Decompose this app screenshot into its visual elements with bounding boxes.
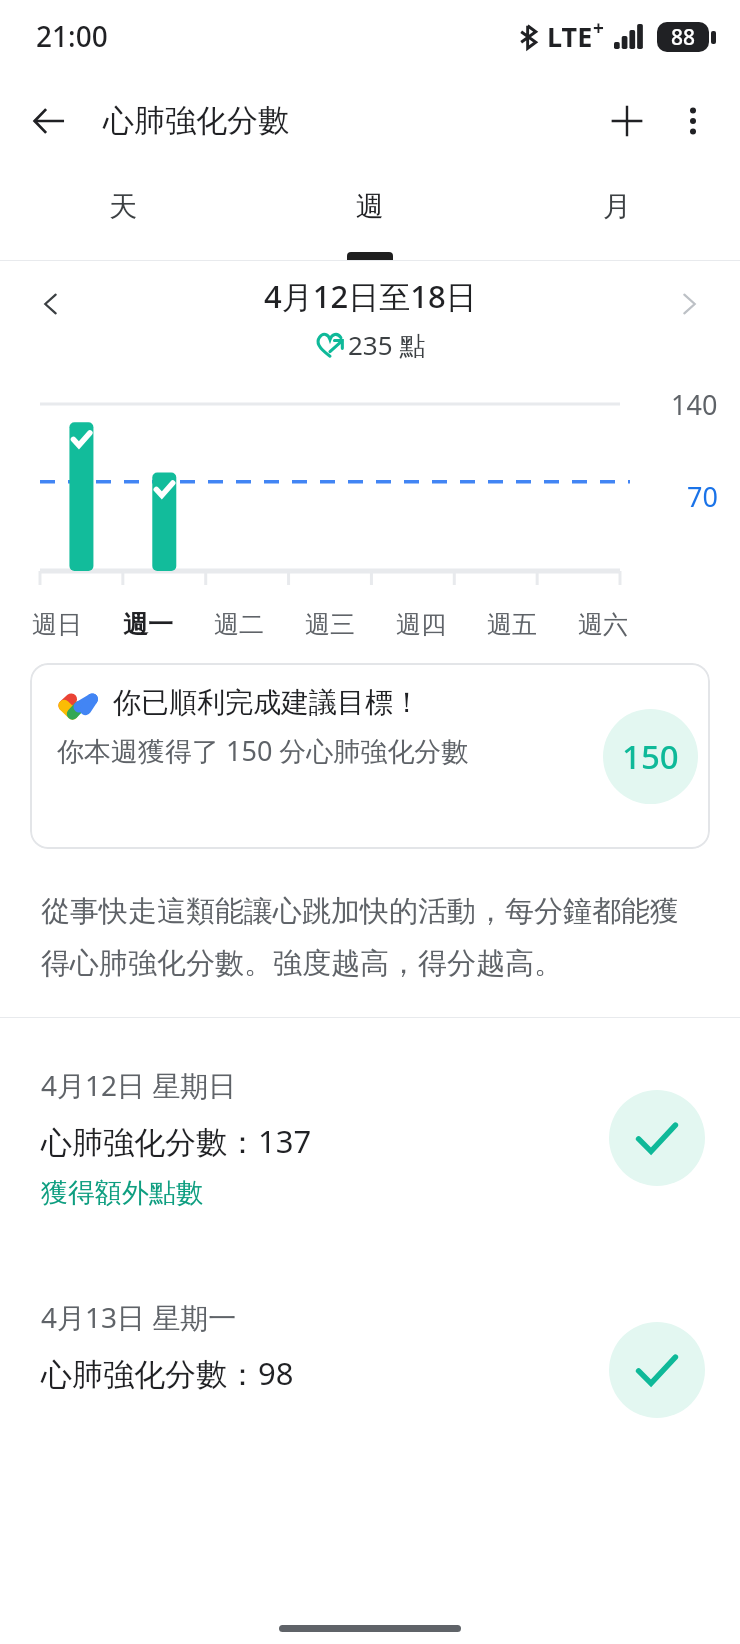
button[interactable]: 上一週 bbox=[22, 275, 80, 333]
staticText: 4月13日 星期一 bbox=[41, 1298, 237, 1336]
staticText: 心肺強化分數：98 bbox=[41, 1352, 294, 1394]
staticText: 週日 bbox=[32, 609, 82, 640]
staticText: 235 點 bbox=[348, 327, 426, 363]
staticText: 你已順利完成建議目標！ bbox=[113, 685, 421, 720]
staticText: 週 bbox=[356, 189, 384, 224]
staticText: 週四 bbox=[396, 609, 446, 640]
staticText: 21:00 bbox=[36, 17, 108, 55]
staticText: 4月12日至18日 bbox=[264, 275, 477, 317]
staticText: 月 bbox=[603, 189, 631, 224]
staticText: 150 bbox=[622, 734, 679, 779]
button[interactable]: 更多選項 bbox=[660, 88, 726, 154]
staticText: LTE bbox=[547, 18, 593, 55]
staticText: 心肺強化分數：137 bbox=[41, 1120, 312, 1162]
staticText: 你本週獲得了 150 分心肺強化分數 bbox=[57, 732, 469, 769]
staticText: 70 bbox=[687, 478, 718, 515]
staticText: 天 bbox=[109, 189, 137, 224]
staticText: 週五 bbox=[487, 609, 537, 640]
button[interactable]: 4月12日 星期日 bbox=[0, 1018, 740, 1250]
staticText: 獲得額外點數 bbox=[41, 1176, 203, 1210]
button[interactable]: 週 bbox=[246, 169, 493, 260]
staticText: 從事快走這類能讓心跳加快的活動，每分鐘都能獲得心肺強化分數。強度越高，得分越高。 bbox=[41, 893, 704, 981]
staticText: 4月12日 星期日 bbox=[41, 1066, 237, 1104]
staticText: 週二 bbox=[214, 609, 264, 640]
button[interactable]: 返回 bbox=[16, 88, 82, 154]
button[interactable]: 月 bbox=[493, 169, 740, 260]
staticText: 心肺強化分數 bbox=[103, 101, 289, 140]
staticText: 88 bbox=[671, 23, 696, 52]
button[interactable]: 天 bbox=[0, 169, 246, 260]
staticText: 週三 bbox=[305, 609, 355, 640]
button[interactable]: 下一週 bbox=[660, 275, 718, 333]
button[interactable]: 新增 bbox=[594, 88, 660, 154]
staticText: 週一 bbox=[123, 609, 173, 640]
staticText: 週六 bbox=[578, 609, 628, 640]
button[interactable]: 4月13日 星期一 bbox=[0, 1250, 740, 1450]
staticText: 140 bbox=[671, 386, 718, 423]
staticText: + bbox=[593, 15, 604, 41]
button[interactable]: 150 bbox=[30, 663, 710, 849]
